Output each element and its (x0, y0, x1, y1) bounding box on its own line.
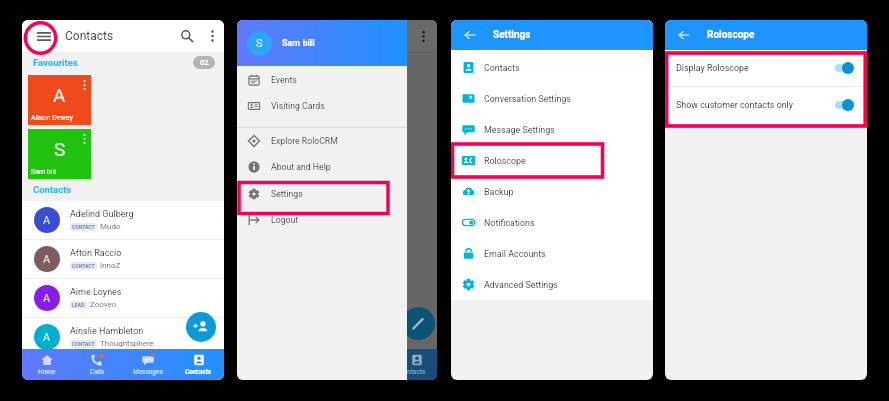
staticText: Ainslie Hambleton (70, 326, 144, 337)
button[interactable]: Logout (237, 207, 407, 233)
button[interactable]: A (28, 75, 91, 125)
button[interactable]: Home (22, 349, 72, 380)
button[interactable]: A (22, 279, 224, 317)
staticText: Zooveo (90, 300, 117, 309)
staticText: Contacts (33, 184, 72, 195)
staticText: LEAD (72, 302, 85, 308)
staticText: InnoZ (100, 261, 121, 270)
staticText: Message Settings (484, 125, 555, 135)
button[interactable]: Add contact (186, 312, 216, 342)
button[interactable]: A (22, 201, 224, 239)
staticText: A (43, 214, 51, 227)
staticText: Contacts (65, 29, 114, 43)
button[interactable]: Back (461, 26, 479, 44)
staticText: Visiting Cards (271, 101, 325, 111)
staticText: Mudo (100, 222, 121, 231)
staticText: Sam bill (31, 168, 56, 176)
staticText: CONTACT (72, 263, 95, 269)
staticText: Roloscope (484, 156, 526, 166)
staticText: Backup (484, 187, 514, 197)
staticText: A (43, 253, 51, 266)
button[interactable]: Visiting Cards (237, 93, 407, 119)
staticText: Email Accounts (484, 249, 546, 259)
button[interactable]: More options (200, 24, 224, 48)
staticText: Display Roloscope (676, 63, 749, 73)
staticText: CONTACT (72, 341, 95, 347)
staticText: Explore RoloCRM (271, 136, 338, 146)
button[interactable]: Show customer contacts only (665, 87, 867, 123)
staticText: A (53, 84, 66, 106)
staticText: Contacts (484, 63, 520, 73)
button[interactable]: Notifications (451, 207, 653, 238)
staticText: Aime Loynes (70, 287, 122, 298)
button[interactable]: Backup (451, 176, 653, 207)
staticText: Adelind Gulberg (70, 209, 134, 220)
button[interactable]: Calls (72, 349, 122, 380)
staticText: ntacts (407, 368, 426, 376)
staticText: CONTACT (72, 224, 95, 230)
button[interactable]: Advanced Settings (451, 269, 653, 300)
staticText: Advanced Settings (484, 280, 558, 290)
staticText: S (256, 37, 263, 50)
button[interactable]: Roloscope (451, 145, 653, 176)
staticText: Afton Raccio (70, 248, 122, 259)
staticText: Thoughtsphere (100, 339, 154, 348)
staticText: Alison Dewey (31, 114, 73, 122)
button[interactable]: Menu (22, 20, 65, 52)
button[interactable]: Explore RoloCRM (237, 128, 407, 154)
staticText: Settings (271, 189, 303, 199)
button[interactable]: Messages (122, 349, 173, 380)
staticText: Contacts (185, 368, 212, 376)
button[interactable]: About and Help (237, 154, 407, 180)
staticText: A (43, 292, 51, 305)
button[interactable]: Settings (237, 180, 407, 207)
button[interactable]: A (22, 318, 224, 356)
button[interactable]: Contacts (451, 52, 653, 83)
staticText: Events (271, 75, 297, 85)
button[interactable]: A (22, 240, 224, 278)
staticText: Home (38, 368, 56, 376)
button[interactable]: Events (237, 67, 407, 93)
staticText: Favourites (33, 57, 78, 68)
staticText: Conversation Settings (484, 94, 571, 104)
staticText: Notifications (484, 218, 535, 228)
staticText: S (54, 138, 66, 160)
button[interactable]: Back (675, 26, 693, 44)
staticText: Show customer contacts only (676, 100, 793, 110)
button[interactable]: Message Settings (451, 114, 653, 145)
staticText: About and Help (271, 162, 331, 172)
staticText: Logout (271, 215, 299, 225)
button[interactable]: Conversation Settings (451, 83, 653, 114)
staticText: Roloscope (707, 29, 755, 41)
button[interactable]: Contacts (173, 349, 224, 380)
button[interactable]: S (28, 129, 91, 179)
staticText: Settings (493, 29, 531, 41)
staticText: Sam bill (282, 38, 315, 49)
staticText: Calls (90, 368, 105, 376)
staticText: A (43, 331, 51, 344)
staticText: 02 (200, 58, 209, 67)
button[interactable]: Email Accounts (451, 238, 653, 269)
button[interactable]: Search (174, 23, 200, 49)
button[interactable]: Display Roloscope (665, 50, 867, 86)
staticText: Messages (133, 368, 163, 376)
